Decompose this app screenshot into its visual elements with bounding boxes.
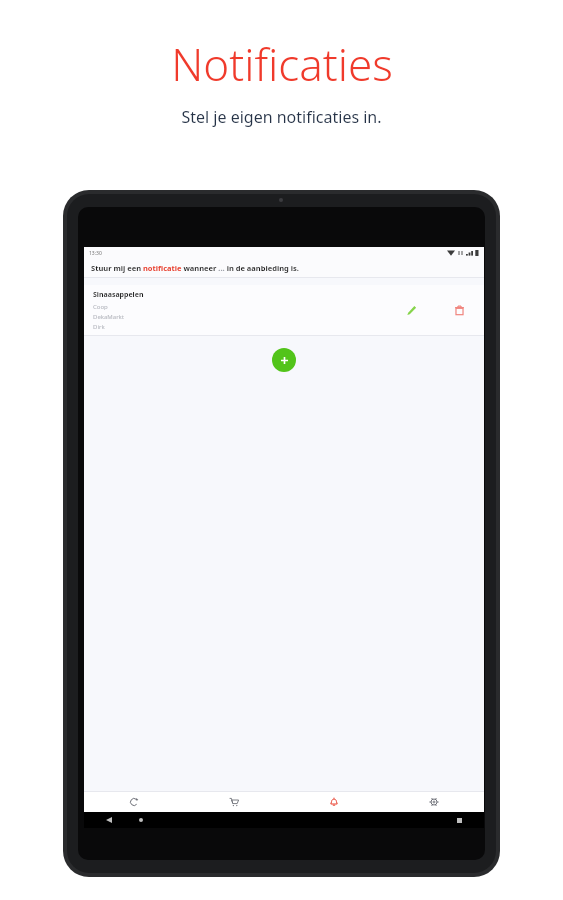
button[interactable]: Recente apps	[452, 813, 466, 827]
button[interactable]: Synchroniseren	[84, 792, 184, 812]
staticText: Stel je eigen notificaties in.	[181, 106, 382, 128]
button[interactable]: Verwijderen	[446, 297, 472, 323]
staticText: Stuur mij een notificatie wanneer ... in…	[91, 263, 299, 273]
staticText: 13:30	[89, 250, 102, 257]
button[interactable]: Bewerken	[398, 297, 424, 323]
staticText: Sinaasappelen	[93, 290, 144, 300]
button[interactable]: Notificaties	[284, 792, 384, 812]
staticText: Dirk	[93, 323, 105, 331]
button[interactable]: Sinaasappelen	[84, 285, 484, 335]
button[interactable]: Winkelwagen	[184, 792, 284, 812]
button[interactable]: Toevoegen	[272, 348, 296, 372]
staticText: DekaMarkt	[93, 313, 124, 321]
button[interactable]: Terug	[102, 813, 116, 827]
button[interactable]: Home	[134, 813, 148, 827]
button[interactable]: Instellingen	[384, 792, 484, 812]
staticText: Coop	[93, 303, 108, 311]
staticText: Notificaties	[171, 34, 393, 94]
